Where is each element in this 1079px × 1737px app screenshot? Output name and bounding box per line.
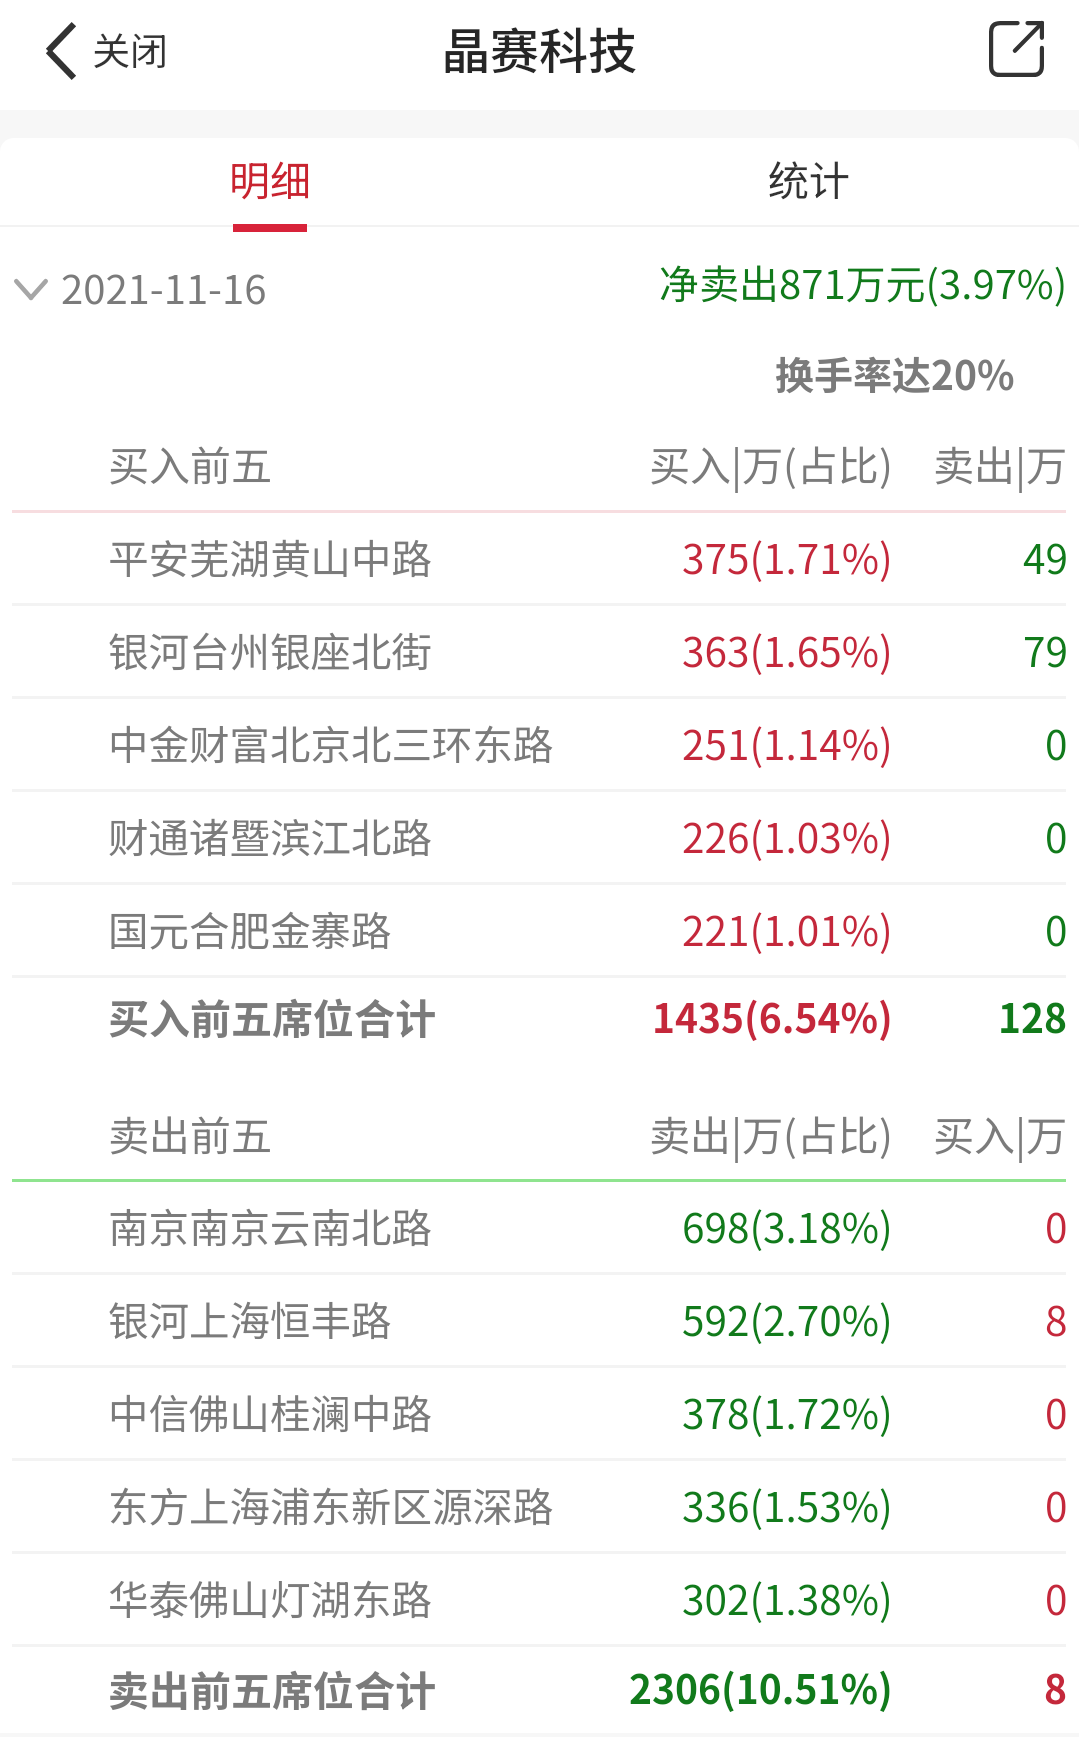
staticText: 226(1.03%) — [682, 806, 893, 865]
staticText: 净卖出871万元(3.97%) — [659, 253, 1068, 311]
button[interactable]: 卖出前五席位合计 — [0, 1644, 1079, 1730]
staticText: 251(1.14%) — [682, 713, 893, 772]
button[interactable]: 财通诸暨滨江北路 — [0, 789, 1079, 882]
staticText: 银河台州银座北街 — [108, 620, 432, 679]
staticText: 0 — [1045, 899, 1068, 958]
staticText: 明细 — [229, 148, 311, 207]
staticText: 0 — [1045, 1382, 1068, 1441]
staticText: 2021-11-16 — [61, 258, 267, 316]
staticText: 2306(10.51%) — [629, 1659, 893, 1715]
button[interactable]: 南京南京云南北路 — [0, 1179, 1079, 1272]
staticText: 79 — [1023, 620, 1068, 679]
staticText: 0 — [1045, 1568, 1068, 1627]
staticText: 8 — [1044, 1659, 1068, 1715]
staticText: 8 — [1045, 1289, 1068, 1348]
staticText: 卖出前五席位合计 — [108, 1658, 436, 1717]
staticText: 375(1.71%) — [682, 527, 893, 586]
staticText: 卖出前五 — [108, 1103, 272, 1162]
button[interactable]: 华泰佛山灯湖东路 — [0, 1551, 1079, 1644]
staticText: 0 — [1045, 806, 1068, 865]
staticText: 买入前五席位合计 — [108, 986, 436, 1045]
button[interactable]: 明细 — [0, 138, 539, 227]
button[interactable]: Open in new window — [963, 5, 1079, 105]
staticText: 南京南京云南北路 — [108, 1196, 432, 1255]
staticText: 378(1.72%) — [682, 1382, 893, 1441]
button[interactable]: 东方上海浦东新区源深路 — [0, 1458, 1079, 1551]
staticText: 银河上海恒丰路 — [108, 1289, 392, 1348]
button[interactable]: 平安芜湖黄山中路 — [0, 510, 1079, 603]
button[interactable]: 中金财富北京北三环东路 — [0, 696, 1079, 789]
button[interactable]: 银河台州银座北街 — [0, 603, 1079, 696]
staticText: 592(2.70%) — [682, 1289, 893, 1348]
staticText: 中金财富北京北三环东路 — [108, 713, 554, 772]
staticText: 买入前五 — [108, 433, 272, 492]
staticText: 363(1.65%) — [682, 620, 893, 679]
staticText: 中信佛山桂澜中路 — [108, 1382, 432, 1441]
staticText: 0 — [1045, 1196, 1068, 1255]
button[interactable]: 关闭 — [0, 10, 199, 100]
button[interactable]: 国元合肥金寨路 — [0, 882, 1079, 975]
staticText: 关闭 — [92, 21, 169, 76]
button[interactable]: 2021-11-16 — [14, 258, 267, 316]
staticText: 221(1.01%) — [682, 899, 893, 958]
staticText: 128 — [998, 988, 1068, 1044]
staticText: 49 — [1023, 527, 1068, 586]
staticText: 卖出|万(占比) — [649, 1103, 893, 1162]
staticText: 买入|万 — [933, 1103, 1068, 1162]
staticText: 698(3.18%) — [682, 1196, 893, 1255]
staticText: 换手率达20% — [775, 345, 1015, 401]
staticText: 0 — [1045, 713, 1068, 772]
staticText: 0 — [1045, 1475, 1068, 1534]
staticText: 302(1.38%) — [682, 1568, 893, 1627]
staticText: 1435(6.54%) — [652, 988, 893, 1044]
staticText: 晶赛科技 — [441, 12, 638, 83]
staticText: 国元合肥金寨路 — [108, 899, 392, 958]
button[interactable]: 买入前五席位合计 — [0, 972, 1079, 1059]
staticText: 东方上海浦东新区源深路 — [108, 1475, 554, 1534]
staticText: 华泰佛山灯湖东路 — [108, 1568, 432, 1627]
staticText: 统计 — [768, 148, 850, 207]
button[interactable]: 中信佛山桂澜中路 — [0, 1365, 1079, 1458]
staticText: 卖出|万 — [933, 433, 1068, 492]
staticText: 财通诸暨滨江北路 — [108, 806, 432, 865]
staticText: 336(1.53%) — [682, 1475, 893, 1534]
button[interactable]: 银河上海恒丰路 — [0, 1272, 1079, 1365]
staticText: 买入|万(占比) — [649, 433, 893, 492]
button[interactable]: 统计 — [539, 138, 1079, 227]
staticText: 平安芜湖黄山中路 — [108, 527, 432, 586]
